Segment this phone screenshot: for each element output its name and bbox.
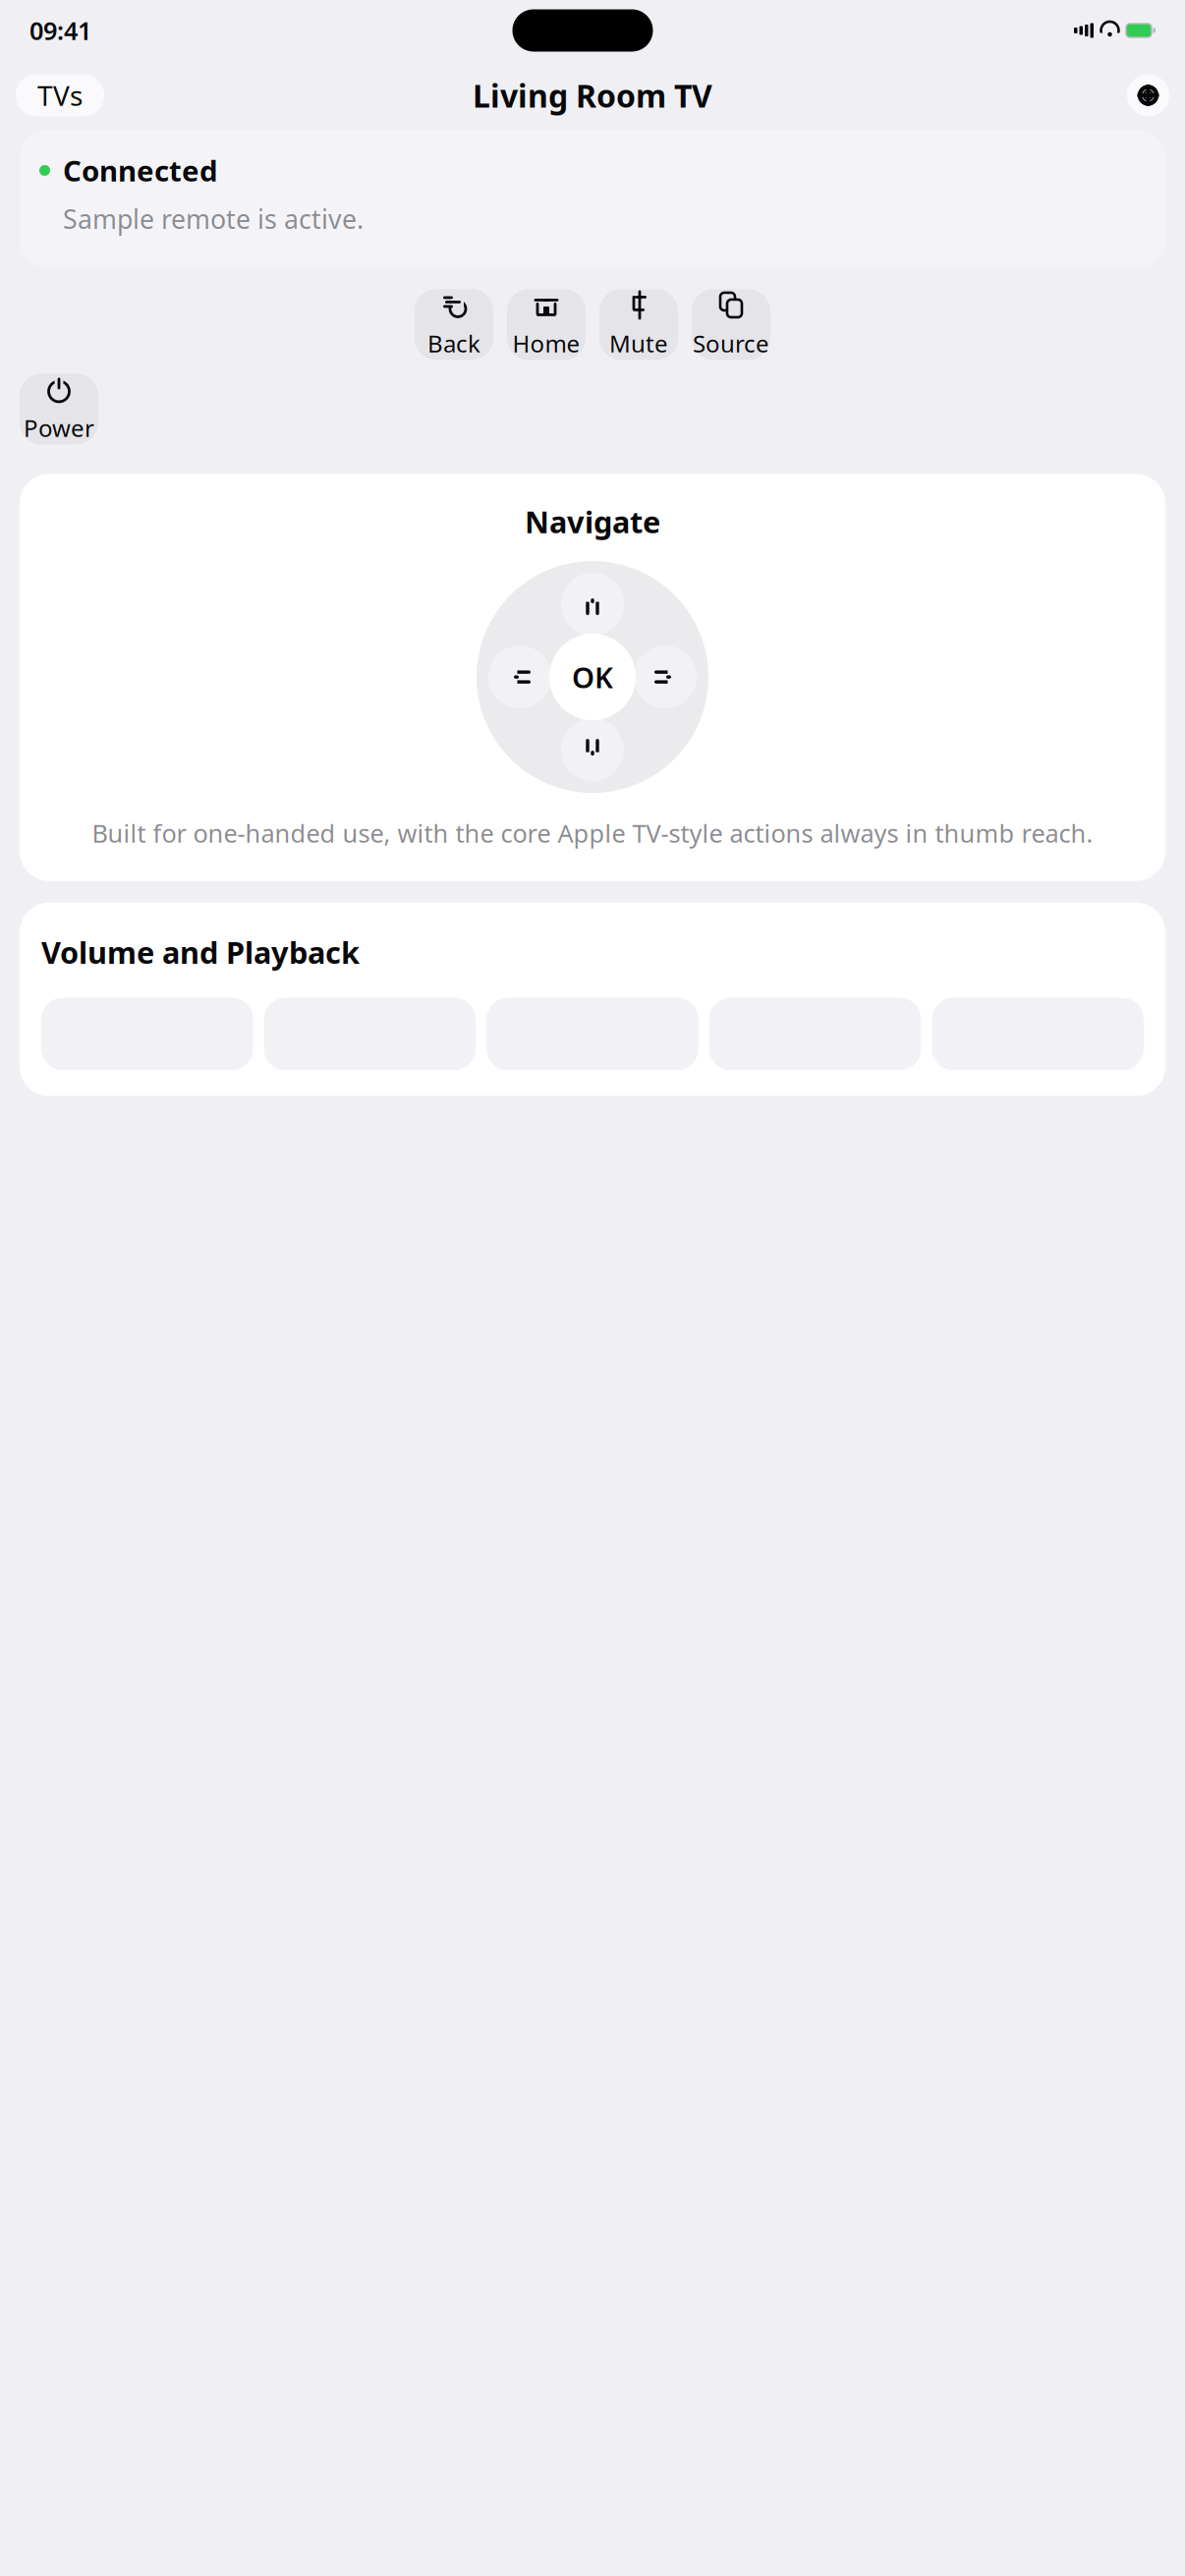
- staticText: Back: [427, 328, 480, 359]
- button[interactable]: Power: [20, 374, 98, 444]
- button[interactable]: Settings: [1127, 74, 1169, 116]
- staticText: OK: [572, 658, 613, 696]
- button[interactable]: Right: [634, 646, 697, 708]
- staticText: TVs: [37, 77, 83, 114]
- button[interactable]: Down: [561, 718, 624, 781]
- button[interactable]: Source: [692, 289, 770, 360]
- staticText: Power: [24, 412, 94, 443]
- button[interactable]: OK: [549, 634, 636, 720]
- staticText: Volume and Playback: [41, 932, 360, 972]
- button[interactable]: Left: [488, 646, 551, 708]
- staticText: Connected: [63, 151, 218, 190]
- button[interactable]: Up: [561, 573, 624, 636]
- button[interactable]: TVs: [16, 74, 104, 116]
- button[interactable]: Back: [415, 289, 493, 360]
- staticText: Sample remote is active.: [63, 201, 364, 236]
- staticText: Mute: [609, 328, 668, 359]
- staticText: Living Room TV: [473, 74, 712, 116]
- staticText: Home: [512, 328, 580, 359]
- staticText: Navigate: [525, 501, 660, 541]
- staticText: Source: [693, 328, 769, 359]
- staticText: 09:41: [29, 14, 91, 47]
- button[interactable]: Mute: [599, 289, 678, 360]
- button[interactable]: Home: [507, 289, 586, 360]
- staticText: Built for one-handed use, with the core …: [92, 817, 1093, 850]
